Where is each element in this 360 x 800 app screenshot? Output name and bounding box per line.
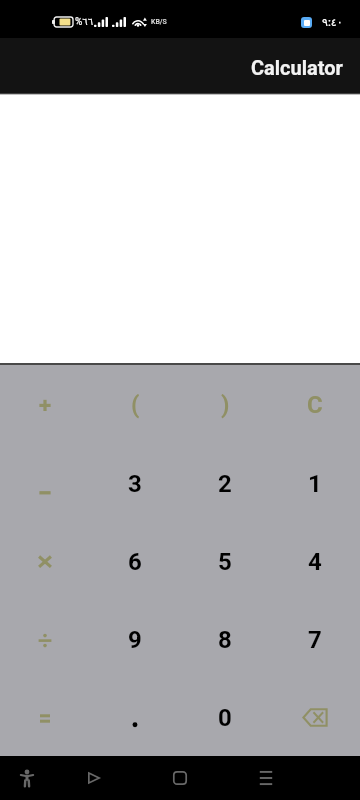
- staticText: %٦٦: [75, 16, 94, 28]
- staticText: C: [307, 391, 323, 419]
- button[interactable]: 9: [90, 600, 180, 678]
- button[interactable]: 3: [90, 444, 180, 522]
- button[interactable]: [0, 600, 90, 678]
- button[interactable]: 5: [180, 522, 270, 600]
- staticText: 4: [308, 548, 322, 576]
- staticText: 1: [308, 470, 322, 498]
- button[interactable]: 4: [270, 522, 360, 600]
- staticText: 0: [218, 704, 232, 732]
- button[interactable]: 1: [270, 444, 360, 522]
- button[interactable]: [0, 522, 90, 600]
- button[interactable]: [0, 678, 90, 756]
- button[interactable]: Back: [75, 756, 113, 800]
- staticText: 3: [128, 470, 142, 498]
- staticText: 7: [308, 626, 322, 654]
- staticText: ): [221, 391, 230, 419]
- staticText: Calculator: [251, 56, 343, 79]
- button[interactable]: [0, 444, 90, 522]
- staticText: KB/S: [151, 18, 167, 26]
- button[interactable]: 8: [180, 600, 270, 678]
- button[interactable]: (: [90, 365, 180, 444]
- button[interactable]: Recents: [247, 756, 285, 800]
- button[interactable]: C: [270, 365, 360, 444]
- button[interactable]: 2: [180, 444, 270, 522]
- staticText: 8: [218, 626, 232, 654]
- staticText: 6: [128, 548, 142, 576]
- button[interactable]: ): [180, 365, 270, 444]
- staticText: 5: [218, 548, 232, 576]
- button[interactable]: [270, 678, 360, 756]
- button[interactable]: 0: [180, 678, 270, 756]
- button[interactable]: Home: [161, 756, 199, 800]
- button[interactable]: [90, 678, 180, 756]
- button[interactable]: 6: [90, 522, 180, 600]
- button[interactable]: [0, 365, 90, 444]
- staticText: ٩:٤٠: [322, 16, 343, 29]
- staticText: (: [131, 391, 140, 419]
- staticText: 9: [128, 626, 142, 654]
- button[interactable]: 7: [270, 600, 360, 678]
- button[interactable]: Accessibility: [8, 756, 46, 800]
- staticText: 2: [218, 470, 232, 498]
